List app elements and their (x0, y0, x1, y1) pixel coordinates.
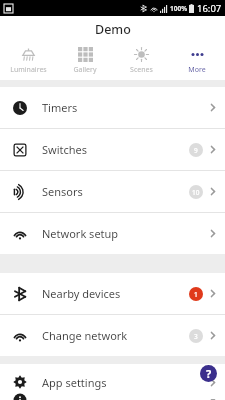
button[interactable]: More (169, 42, 225, 80)
staticText: Luminaires (10, 65, 47, 75)
staticText: More (188, 65, 206, 75)
staticText: Nearby devices (42, 286, 189, 301)
staticText: ? (206, 366, 212, 381)
staticText: 9 (194, 146, 198, 155)
button[interactable]: Gallery (57, 42, 113, 80)
button[interactable]: Luminaires (0, 42, 57, 80)
button[interactable]: Scenes (113, 42, 169, 80)
button[interactable]: Sensors (0, 171, 225, 212)
staticText: Sensors (42, 184, 189, 199)
staticText: 3 (194, 332, 198, 341)
staticText: Timers (42, 100, 189, 115)
button[interactable]: Change network (0, 315, 225, 356)
staticText: Demo (95, 21, 131, 38)
staticText: 16:07 (197, 2, 222, 15)
button[interactable]: Nearby devices (0, 273, 225, 314)
button[interactable]: App settings (0, 364, 225, 400)
staticText: 10 (192, 188, 200, 197)
staticText: Scenes (130, 65, 153, 75)
staticText: Change network (42, 328, 189, 343)
staticText: 100% (170, 4, 188, 13)
button[interactable]: Switches (0, 129, 225, 170)
staticText: 1 (194, 290, 198, 299)
staticText: Gallery (73, 65, 97, 75)
button[interactable]: Help (200, 365, 217, 382)
button[interactable]: Network setup (0, 213, 225, 254)
staticText: App settings (42, 375, 189, 390)
staticText: Network setup (42, 226, 189, 241)
staticText: Switches (42, 142, 189, 157)
button[interactable]: Timers (0, 87, 225, 128)
